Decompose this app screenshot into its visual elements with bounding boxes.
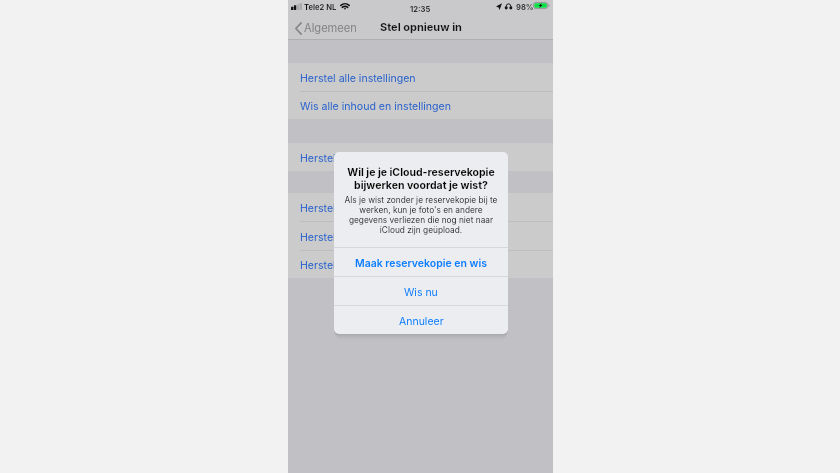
button[interactable]: Annuleer — [334, 306, 508, 334]
staticText: Herstel locatie en privacy — [300, 259, 428, 272]
staticText: Als je wist zonder je reservekopie bij t… — [344, 195, 498, 235]
staticText: 12:35 — [410, 5, 431, 14]
button[interactable]: Herstel toetsenbordwoordenboek — [288, 193, 553, 221]
staticText: Annuleer — [399, 315, 444, 328]
button[interactable]: Maak reservekopie en wis — [334, 248, 508, 276]
button[interactable]: Wis alle inhoud en instellingen — [288, 92, 553, 119]
staticText: Algemeen — [304, 21, 357, 34]
staticText: Tele2 NL — [304, 3, 337, 12]
staticText: Herstel indeling beginscherm — [300, 231, 447, 244]
staticText: Wis nu — [404, 286, 438, 299]
button[interactable]: Herstel alle instellingen — [288, 63, 553, 91]
staticText: Stel opnieuw in — [380, 20, 462, 33]
staticText: Wil je je iCloud-reservekopie bijwerken … — [344, 166, 498, 192]
button[interactable]: Herstel indeling beginscherm — [288, 222, 553, 250]
staticText: Wis alle inhoud en instellingen — [300, 100, 452, 113]
staticText: Maak reservekopie en wis — [355, 257, 487, 270]
staticText: Herstel alle instellingen — [300, 72, 416, 85]
button[interactable]: Herstel locatie en privacy — [288, 251, 553, 278]
staticText: Herstel netwerkinstellingen — [300, 152, 437, 165]
button[interactable]: Herstel netwerkinstellingen — [288, 143, 553, 171]
staticText: Herstel toetsenbordwoordenboek — [300, 202, 468, 215]
button[interactable]: Terug naar Algemeen — [288, 23, 361, 36]
staticText: 98% — [516, 3, 534, 12]
button[interactable]: Wis nu — [334, 277, 508, 305]
